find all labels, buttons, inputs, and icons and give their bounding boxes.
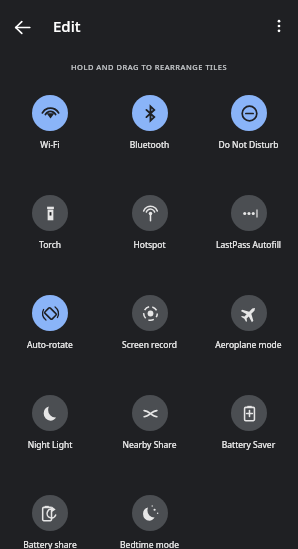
button[interactable]: Auto-rotate bbox=[0, 295, 100, 395]
button[interactable]: Screen record bbox=[100, 295, 199, 395]
button[interactable]: Wi-Fi bbox=[0, 95, 100, 195]
staticText: Wi-Fi bbox=[1, 139, 99, 151]
button[interactable]: Bluetooth bbox=[100, 95, 199, 195]
staticText: Bedtime mode bbox=[101, 539, 198, 549]
staticText: Night Light bbox=[1, 439, 99, 451]
button[interactable]: Night Light bbox=[0, 395, 100, 495]
staticText: Do Not Disturb bbox=[200, 139, 297, 151]
staticText: Nearby Share bbox=[101, 439, 198, 451]
button[interactable]: Back bbox=[9, 14, 35, 40]
button[interactable]: Hotspot bbox=[100, 195, 199, 295]
button[interactable]: Bedtime mode bbox=[100, 495, 199, 549]
button[interactable]: Nearby Share bbox=[100, 395, 199, 495]
staticText: Bluetooth bbox=[101, 139, 198, 151]
button[interactable]: LastPass Autofill bbox=[199, 195, 298, 295]
staticText: Edit bbox=[53, 16, 81, 36]
staticText: HOLD AND DRAG TO REARRANGE TILES bbox=[0, 62, 298, 72]
button[interactable]: Battery share bbox=[0, 495, 100, 549]
staticText: LastPass Autofill bbox=[200, 239, 297, 251]
staticText: Hotspot bbox=[101, 239, 198, 251]
button[interactable]: Do Not Disturb bbox=[199, 95, 298, 195]
button[interactable]: Torch bbox=[0, 195, 100, 295]
staticText: Aeroplane mode bbox=[200, 339, 297, 351]
button[interactable]: Battery Saver bbox=[199, 395, 298, 495]
staticText: Battery Saver bbox=[200, 439, 297, 451]
button[interactable]: Aeroplane mode bbox=[199, 295, 298, 395]
staticText: Auto-rotate bbox=[1, 339, 99, 351]
staticText: Torch bbox=[1, 239, 99, 251]
staticText: Battery share bbox=[1, 539, 99, 549]
staticText: Screen record bbox=[101, 339, 198, 351]
button[interactable]: More options bbox=[267, 14, 291, 38]
